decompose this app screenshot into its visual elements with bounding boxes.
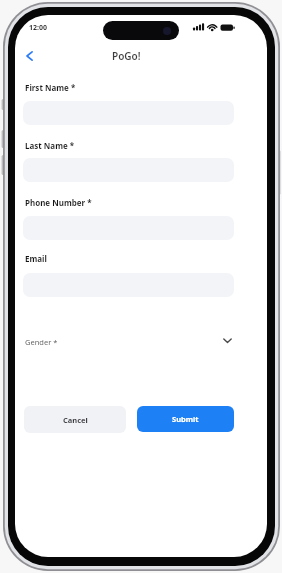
staticText: Submit — [172, 414, 199, 424]
button[interactable]: Cancel — [24, 406, 126, 433]
staticText: Email — [25, 253, 47, 264]
button[interactable]: Submit — [137, 406, 234, 432]
button[interactable] — [21, 48, 38, 64]
staticText: First Name * — [25, 82, 76, 93]
staticText: Phone Number * — [25, 197, 92, 208]
staticText: 12:00 — [29, 23, 47, 33]
staticText: Last Name * — [25, 140, 75, 151]
staticText: Gender * — [25, 337, 58, 347]
staticText: Cancel — [63, 415, 88, 425]
staticText: PoGo! — [112, 49, 141, 63]
button[interactable]: Gender * — [23, 331, 235, 350]
